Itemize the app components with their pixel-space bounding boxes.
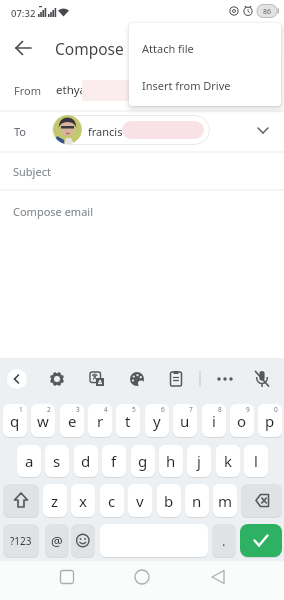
staticText: 4 (104, 405, 108, 414)
button[interactable]: s (45, 445, 69, 477)
button[interactable]: d (74, 445, 98, 477)
staticText: o (237, 411, 247, 431)
staticText: v (136, 491, 144, 511)
staticText: ethya (56, 82, 87, 98)
button[interactable]: c (100, 484, 124, 517)
staticText: francis (88, 124, 123, 139)
button[interactable]: r (88, 404, 112, 437)
staticText: 1 (19, 405, 23, 414)
button[interactable]: . (212, 524, 236, 557)
button[interactable]: l (244, 445, 268, 477)
staticText: b (164, 491, 174, 511)
staticText: z (51, 491, 59, 511)
staticText: j (197, 451, 201, 471)
staticText: l (254, 451, 258, 471)
button[interactable]: n (185, 484, 209, 517)
staticText: Compose (55, 38, 124, 59)
button[interactable]: k (216, 445, 240, 477)
button[interactable]: q (3, 404, 27, 437)
staticText: ?123 (10, 534, 32, 548)
button[interactable] (3, 484, 39, 517)
staticText: Attach file (142, 41, 194, 56)
staticText: c (108, 491, 116, 511)
button[interactable]: b (157, 484, 181, 517)
staticText: n (192, 491, 202, 511)
button[interactable] (249, 366, 275, 392)
button[interactable]: ?123 (3, 524, 39, 557)
button[interactable]: z (43, 484, 67, 517)
staticText: t (125, 411, 131, 431)
button[interactable]: x (71, 484, 95, 517)
button[interactable]: v (128, 484, 152, 517)
button[interactable]: y (145, 404, 169, 437)
staticText: 86 (263, 7, 272, 17)
staticText: f (111, 451, 117, 471)
button[interactable]: Attach file (129, 23, 281, 64)
staticText: m (218, 491, 233, 511)
button[interactable]: w (31, 404, 55, 437)
button[interactable]: e (60, 404, 84, 437)
button[interactable]: f (102, 445, 126, 477)
staticText: . (222, 532, 226, 550)
button[interactable]: i (202, 404, 226, 437)
staticText: 0 (274, 405, 278, 414)
button[interactable] (44, 366, 70, 392)
button[interactable] (84, 366, 110, 392)
staticText: d (81, 451, 91, 471)
staticText: 7 (189, 405, 193, 414)
button[interactable] (205, 564, 231, 590)
staticText: 9 (246, 405, 250, 414)
button[interactable]: g (131, 445, 155, 477)
staticText: To (14, 124, 27, 139)
button[interactable]: h (159, 445, 183, 477)
button[interactable]: u (173, 404, 197, 437)
button[interactable] (6, 36, 42, 60)
staticText: g (138, 451, 148, 471)
staticText: s (53, 451, 61, 471)
button[interactable] (212, 366, 238, 392)
staticText: u (180, 411, 190, 431)
staticText: 5 (132, 405, 136, 414)
staticText: @ (51, 532, 63, 550)
staticText: 6 (161, 405, 165, 414)
staticText: 07:32 (11, 7, 36, 20)
staticText: w (37, 411, 49, 431)
staticText: a (25, 451, 34, 471)
staticText: 2 (47, 405, 51, 414)
button[interactable] (250, 118, 276, 142)
staticText: Insert from Drive (142, 78, 231, 93)
button[interactable]: @ (45, 524, 69, 557)
button[interactable]: a (17, 445, 41, 477)
button[interactable] (71, 524, 95, 557)
button[interactable] (54, 564, 80, 590)
staticText: From (14, 83, 41, 98)
staticText: e (68, 411, 77, 431)
button[interactable]: j (187, 445, 211, 477)
staticText: Compose email (13, 204, 93, 219)
staticText: Subject (13, 164, 51, 179)
staticText: y (153, 411, 161, 431)
button[interactable]: m (213, 484, 237, 517)
staticText: i (212, 411, 216, 431)
button[interactable] (163, 366, 189, 392)
button[interactable]: p (258, 404, 282, 437)
button[interactable] (129, 564, 155, 590)
staticText: q (10, 411, 20, 431)
staticText: k (224, 451, 233, 471)
button[interactable] (7, 369, 27, 389)
staticText: 3 (76, 405, 80, 414)
staticText: h (166, 451, 176, 471)
button[interactable]: o (230, 404, 254, 437)
staticText: p (265, 411, 275, 431)
staticText: x (79, 491, 87, 511)
staticText: 8 (218, 405, 222, 414)
staticText: r (97, 411, 104, 431)
button[interactable] (241, 484, 282, 517)
button[interactable]: t (116, 404, 140, 437)
button[interactable]: francis (52, 115, 210, 145)
button[interactable]: Insert from Drive (129, 64, 281, 106)
button[interactable] (124, 366, 150, 392)
button[interactable] (240, 524, 282, 557)
